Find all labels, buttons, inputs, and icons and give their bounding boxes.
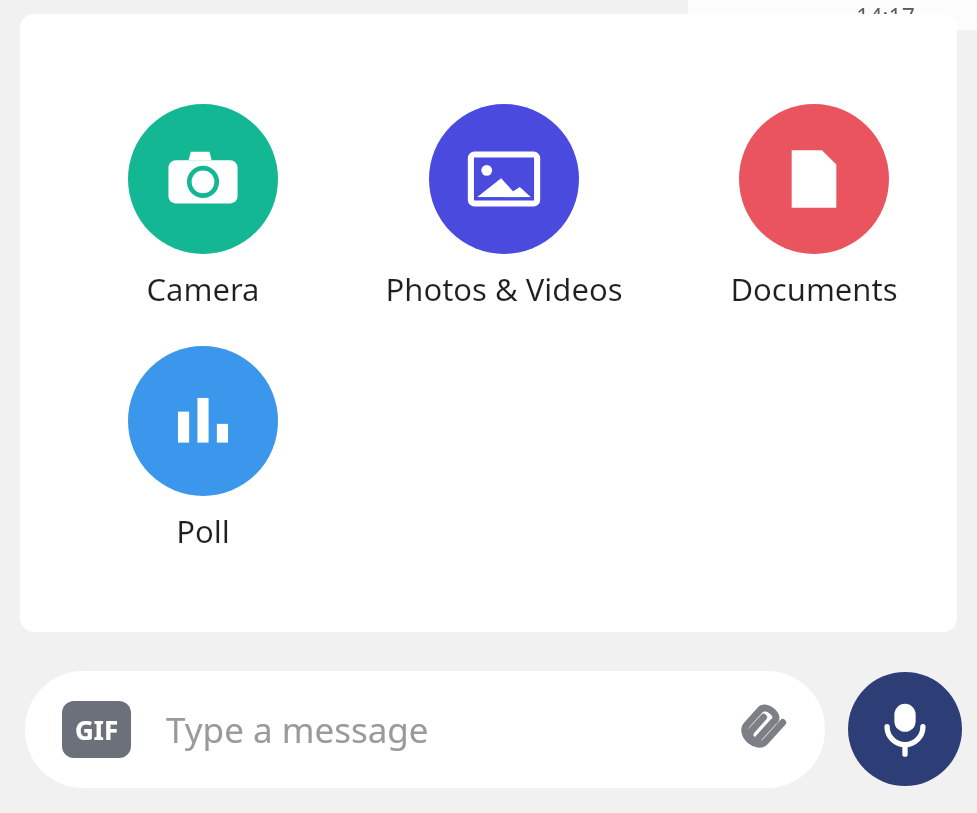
staticText: Type a message bbox=[166, 706, 723, 754]
staticText: Documents bbox=[730, 268, 898, 310]
button[interactable]: Poll bbox=[73, 346, 333, 552]
staticText: 14:17 bbox=[856, 0, 915, 30]
staticText: Camera bbox=[146, 268, 260, 310]
staticText: Poll bbox=[176, 510, 230, 552]
button[interactable]: Photos and Videos bbox=[374, 104, 634, 310]
staticText: Photos & Videos bbox=[385, 268, 623, 310]
staticText: GIF bbox=[75, 712, 119, 747]
button[interactable]: Camera bbox=[73, 104, 333, 310]
button[interactable]: GIF bbox=[62, 701, 131, 758]
button[interactable]: GIF bbox=[25, 671, 825, 788]
button[interactable]: Record voice message bbox=[848, 672, 962, 786]
button[interactable]: Documents bbox=[684, 104, 944, 310]
button[interactable]: Attach file bbox=[723, 694, 795, 766]
